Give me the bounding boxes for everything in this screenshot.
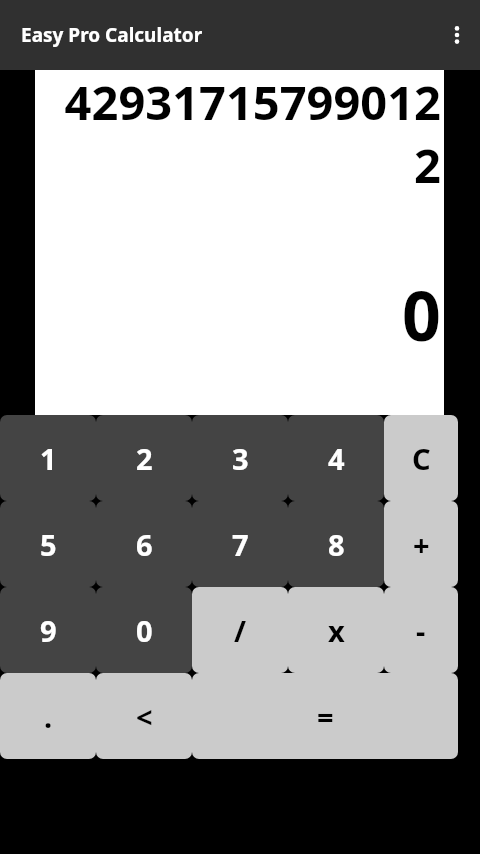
staticText: 6 xyxy=(136,525,153,564)
button[interactable]: 6 xyxy=(96,501,192,587)
button[interactable]: = xyxy=(192,673,458,759)
staticText: . xyxy=(44,697,53,736)
button[interactable]: + xyxy=(384,501,458,587)
staticText: / xyxy=(234,611,247,650)
staticText: + xyxy=(413,525,430,564)
staticText: 9 xyxy=(40,611,57,650)
button[interactable]: 9 xyxy=(0,587,96,673)
button[interactable]: C xyxy=(384,415,458,501)
button[interactable]: 0 xyxy=(96,587,192,673)
button[interactable]: More options xyxy=(434,0,480,70)
staticText: 0 xyxy=(136,611,153,650)
staticText: = xyxy=(317,697,334,736)
staticText: 42931715799012 2 xyxy=(47,70,441,196)
button[interactable]: 2 xyxy=(96,415,192,501)
button[interactable]: 4 xyxy=(288,415,384,501)
button[interactable]: 5 xyxy=(0,501,96,587)
staticText: - xyxy=(416,611,426,650)
staticText: < xyxy=(136,697,153,736)
staticText: 5 xyxy=(40,525,57,564)
staticText: 3 xyxy=(232,439,249,478)
button[interactable]: 8 xyxy=(288,501,384,587)
staticText: 7 xyxy=(232,525,249,564)
button[interactable]: - xyxy=(384,587,458,673)
button[interactable]: 7 xyxy=(192,501,288,587)
staticText: x xyxy=(328,611,345,650)
staticText: 4 xyxy=(328,439,345,478)
button[interactable]: x xyxy=(288,587,384,673)
staticText: C xyxy=(412,439,431,478)
staticText: 1 xyxy=(40,439,57,478)
button[interactable]: 1 xyxy=(0,415,96,501)
button[interactable]: 3 xyxy=(192,415,288,501)
staticText: Easy Pro Calculator xyxy=(21,22,203,48)
staticText: 8 xyxy=(328,525,345,564)
staticText: 0 xyxy=(35,268,441,361)
button[interactable]: / xyxy=(192,587,288,673)
button[interactable]: . xyxy=(0,673,96,759)
button[interactable]: < xyxy=(96,673,192,759)
staticText: 2 xyxy=(136,439,153,478)
